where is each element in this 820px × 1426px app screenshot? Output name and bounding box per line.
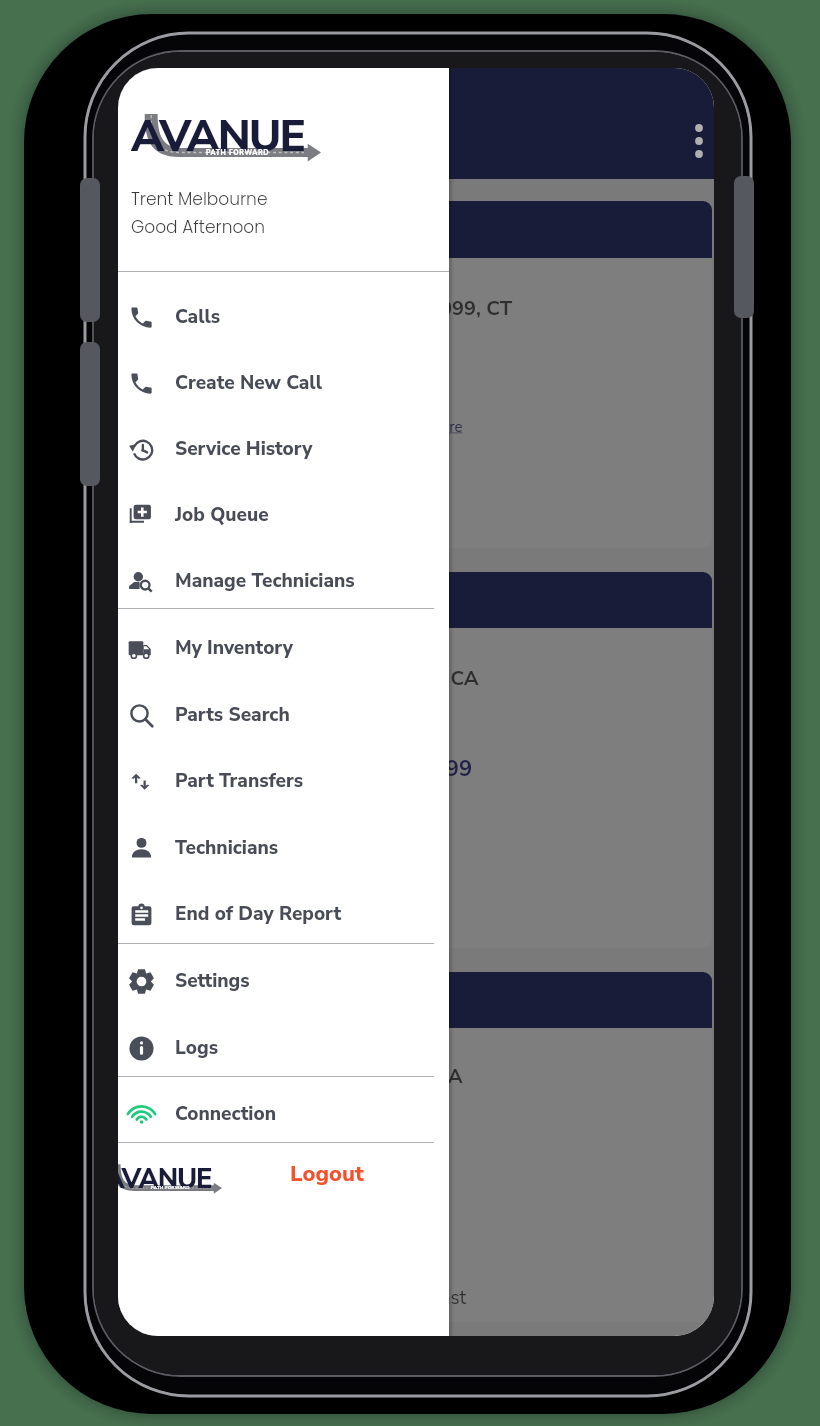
button[interactable]: Settings	[118, 948, 449, 1014]
button[interactable]: More options	[679, 121, 714, 161]
staticText: Logout	[290, 1159, 364, 1189]
button[interactable]: Calls	[118, 284, 449, 350]
staticText: Create New Call	[175, 370, 323, 396]
staticText: My Inventory	[175, 635, 293, 661]
button[interactable]: Part Transfers	[118, 748, 449, 814]
button[interactable]: Create New Call	[118, 350, 449, 416]
button[interactable]: End of Day Report	[118, 881, 449, 947]
staticText: 5670099, CT	[392, 295, 513, 322]
button[interactable]: Job Queue	[118, 482, 449, 548]
button[interactable]: Logout	[290, 1157, 380, 1191]
staticText: Request	[396, 1285, 467, 1311]
staticText: Parts Search	[175, 702, 290, 728]
button[interactable]: Manage Technicians	[118, 548, 449, 614]
button[interactable]: Service History	[118, 416, 449, 482]
staticText: Logs	[175, 1035, 219, 1061]
staticText: #45699	[393, 754, 473, 784]
button[interactable]: Connection	[118, 1081, 449, 1147]
staticText: View More	[390, 417, 463, 437]
button[interactable]: Logs	[118, 1015, 449, 1081]
staticText: Settings	[175, 968, 250, 994]
button[interactable]: Parts Search	[118, 682, 449, 748]
staticText: Calls	[175, 304, 221, 330]
staticText: PATH FORWARD	[151, 1185, 190, 1191]
staticText: Connection	[175, 1101, 276, 1127]
button[interactable]: My Inventory	[118, 615, 449, 681]
staticText: Service History	[175, 436, 313, 462]
staticText: PATH FORWARD	[206, 148, 270, 157]
staticText: Technicians	[175, 835, 279, 861]
staticText: End of Day Report	[175, 901, 342, 927]
staticText: AVANUE	[118, 1160, 212, 1191]
button[interactable]: Technicians	[118, 815, 449, 881]
staticText: Part Transfers	[175, 768, 304, 794]
staticText: Erie, PA	[390, 1063, 463, 1090]
staticText: AVANUE	[131, 107, 305, 157]
staticText: Good Afternoon	[131, 215, 265, 239]
staticText: Fresno, CA	[378, 665, 479, 692]
staticText: Manage Technicians	[175, 568, 355, 594]
staticText: Job Queue	[175, 502, 269, 528]
staticText: Trent Melbourne	[131, 187, 268, 211]
